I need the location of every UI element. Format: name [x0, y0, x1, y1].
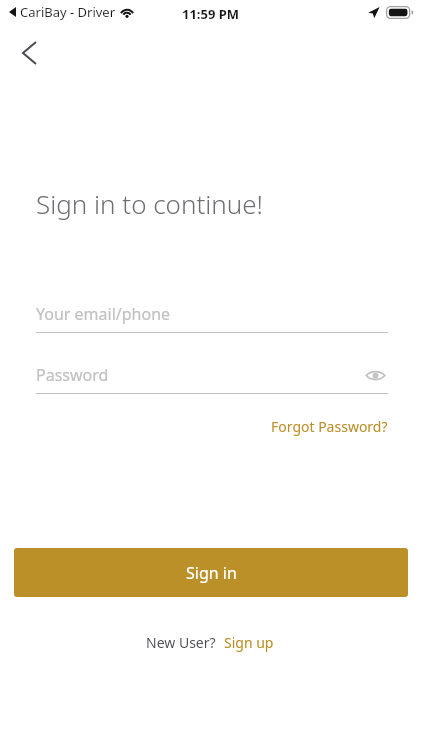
staticText: Sign in to continue!: [36, 186, 263, 221]
staticText: Sign up: [224, 633, 274, 652]
button[interactable]: Forgot Password?: [269, 414, 390, 439]
staticText: Forgot Password?: [271, 417, 388, 436]
staticText: Sign in: [186, 562, 237, 584]
staticText: Your email/phone: [36, 303, 171, 325]
button[interactable]: Password: [36, 361, 388, 394]
button[interactable]: Your email/phone: [36, 300, 388, 333]
button[interactable]: Sign up: [222, 630, 276, 655]
staticText: New User?: [146, 633, 216, 652]
staticText: Password: [36, 364, 109, 386]
button[interactable]: Sign in: [14, 548, 408, 597]
button[interactable]: Show password: [362, 362, 388, 388]
staticText: CariBay - Driver: [20, 3, 116, 21]
staticText: 11:59 PM: [182, 5, 240, 23]
button[interactable]: Back: [8, 32, 50, 74]
